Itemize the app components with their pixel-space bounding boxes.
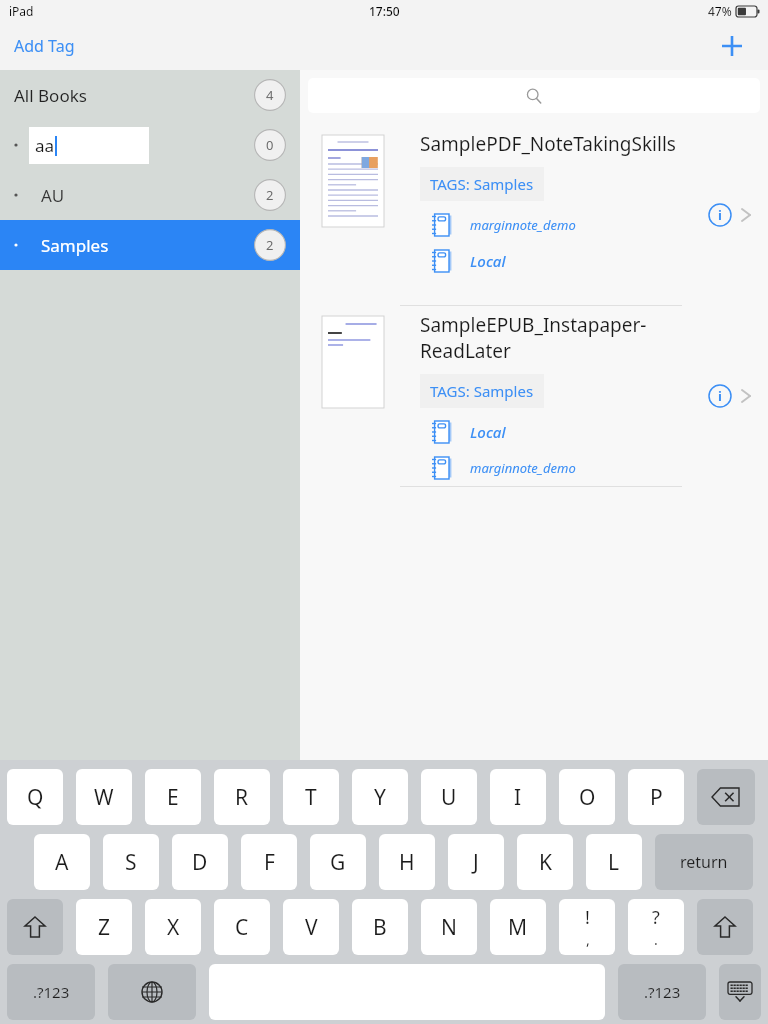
staticText: O (579, 783, 596, 812)
staticText: B (373, 913, 387, 942)
button[interactable]: H (379, 834, 435, 890)
staticText: A (55, 848, 69, 877)
button[interactable]: Y (352, 769, 408, 825)
button[interactable]: D (172, 834, 228, 890)
button[interactable]: Hide keyboard (719, 964, 761, 1020)
button[interactable]: W (76, 769, 132, 825)
staticText: 2 (266, 236, 274, 254)
staticText: iPad (9, 3, 34, 19)
button[interactable]: L (586, 834, 642, 890)
staticText: i (718, 206, 722, 224)
staticText: T (305, 783, 317, 812)
staticText: F (264, 848, 275, 877)
button[interactable]: U (421, 769, 477, 825)
button[interactable]: Change keyboard (108, 964, 196, 1020)
button[interactable]: .?123 (618, 964, 706, 1020)
staticText: SamplePDF_NoteTakingSkills (420, 131, 676, 157)
staticText: TAGS: Samples (430, 174, 534, 194)
staticText: SampleEPUB_Instapaper-ReadLater (420, 312, 690, 364)
staticText: C (235, 913, 249, 942)
staticText: ! (585, 905, 590, 930)
button[interactable]: Info (706, 201, 734, 229)
staticText: TAGS: Samples (430, 381, 534, 401)
button[interactable]: G (310, 834, 366, 890)
button[interactable]: P (628, 769, 684, 825)
button[interactable]: T (283, 769, 339, 825)
button[interactable]: TAGS: Samples (420, 374, 544, 408)
button[interactable]: V (283, 899, 339, 955)
staticText: H (399, 848, 415, 877)
staticText: aa (35, 134, 55, 157)
staticText: . (654, 930, 658, 949)
button[interactable]: marginnote_demo (420, 211, 576, 239)
button[interactable]: Info (706, 382, 734, 410)
button[interactable]: SampleEPUB_Instapaper-ReadLater (300, 306, 768, 486)
staticText: Z (98, 913, 111, 942)
button[interactable]: return (655, 834, 753, 890)
staticText: X (167, 913, 180, 942)
button[interactable]: .?123 (7, 964, 95, 1020)
button[interactable]: Z (76, 899, 132, 955)
button[interactable]: aa (0, 120, 300, 170)
staticText: K (539, 848, 552, 877)
staticText: Y (374, 783, 386, 812)
staticText: 0 (266, 136, 274, 154)
button[interactable]: J (448, 834, 504, 890)
button[interactable]: Shift (697, 899, 753, 955)
button[interactable]: Shift (7, 899, 63, 955)
staticText: .?123 (644, 982, 681, 1002)
button[interactable]: Add (714, 28, 750, 64)
button[interactable]: M (490, 899, 546, 955)
button[interactable]: ! (559, 899, 615, 955)
button[interactable]: All Books (0, 70, 300, 120)
button[interactable]: Search (308, 78, 760, 113)
button[interactable]: Samples (0, 220, 300, 270)
button[interactable]: F (241, 834, 297, 890)
staticText: .?123 (33, 982, 70, 1002)
staticText: V (305, 913, 318, 942)
button[interactable]: C (214, 899, 270, 955)
staticText: Local (470, 251, 506, 271)
button[interactable]: Add Tag (6, 29, 83, 63)
button[interactable]: Local (420, 247, 506, 275)
button[interactable]: S (103, 834, 159, 890)
button[interactable]: SamplePDF_NoteTakingSkills (300, 125, 768, 305)
staticText: D (192, 848, 208, 877)
button[interactable]: Backspace (697, 769, 755, 825)
button[interactable]: K (517, 834, 573, 890)
button[interactable]: X (145, 899, 201, 955)
button[interactable]: AU (0, 170, 300, 220)
button[interactable]: E (145, 769, 201, 825)
staticText: M (508, 913, 528, 942)
staticText: N (441, 913, 457, 942)
button[interactable]: ? (628, 899, 684, 955)
staticText: Samples (41, 234, 254, 257)
staticText: W (94, 783, 114, 812)
staticText: 47% (708, 3, 732, 19)
button[interactable]: Local (420, 418, 506, 446)
button[interactable]: N (421, 899, 477, 955)
staticText: P (650, 783, 663, 812)
staticText: I (514, 783, 522, 812)
button[interactable]: I (490, 769, 546, 825)
staticText: marginnote_demo (470, 459, 576, 477)
staticText: i (718, 387, 722, 405)
staticText: Q (27, 783, 44, 812)
staticText: S (125, 848, 137, 877)
button[interactable]: marginnote_demo (420, 454, 576, 482)
button[interactable]: TAGS: Samples (420, 167, 544, 201)
staticText: R (235, 783, 249, 812)
staticText: 4 (266, 86, 274, 104)
staticText: L (608, 848, 620, 877)
staticText: ? (652, 905, 660, 930)
staticText: E (167, 783, 179, 812)
staticText: 2 (266, 186, 274, 204)
staticText: Add Tag (14, 35, 75, 57)
staticText: 17:50 (369, 3, 400, 19)
button[interactable]: Q (7, 769, 63, 825)
button[interactable]: R (214, 769, 270, 825)
button[interactable]: A (34, 834, 90, 890)
button[interactable]: B (352, 899, 408, 955)
button[interactable]: O (559, 769, 615, 825)
